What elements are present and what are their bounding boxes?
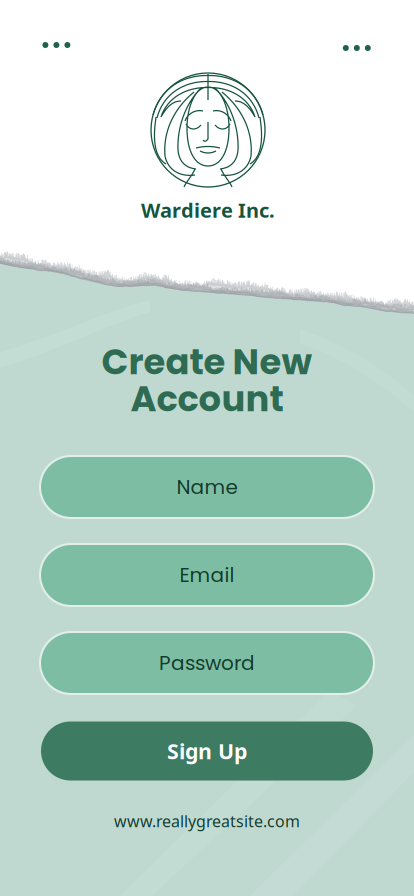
staticText: www.reallygreatsite.com (114, 810, 300, 832)
staticText: Wardiere Inc. (141, 197, 275, 223)
staticText: Sign Up (167, 737, 247, 765)
staticText: Name (176, 473, 237, 501)
button[interactable]: Sign Up (41, 721, 373, 780)
button[interactable]: Email (41, 545, 373, 605)
staticText: Create New (101, 337, 312, 387)
button[interactable]: Password (41, 633, 373, 693)
staticText: Password (159, 649, 255, 677)
button[interactable]: Name (41, 457, 373, 517)
staticText: Account (130, 374, 283, 424)
staticText: Email (179, 561, 234, 589)
